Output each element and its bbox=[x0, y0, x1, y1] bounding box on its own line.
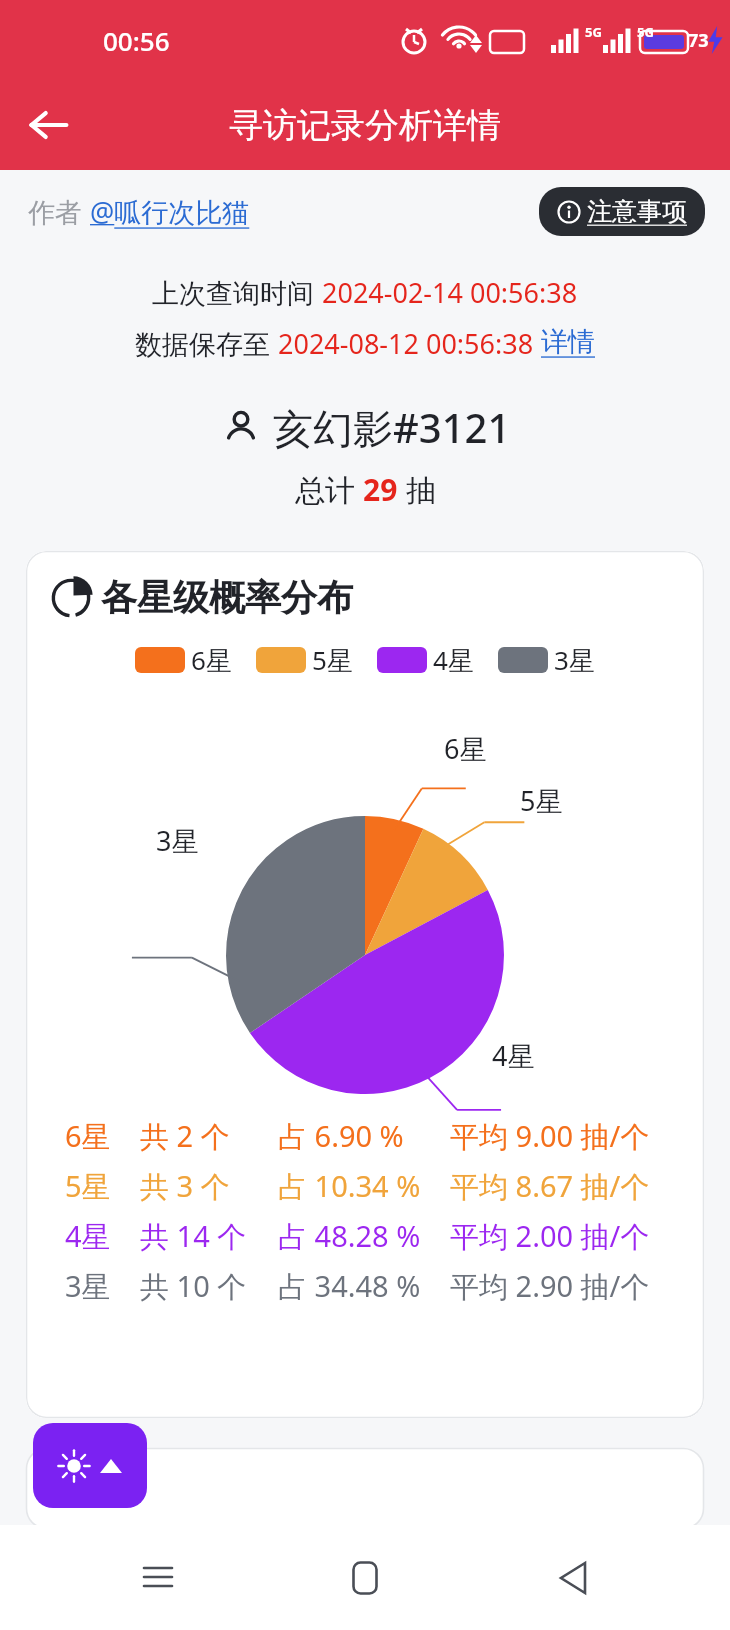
button[interactable]: Back bbox=[523, 1528, 623, 1628]
staticText: 3星 bbox=[156, 822, 199, 859]
button[interactable]: Back bbox=[0, 80, 96, 170]
staticText: 平均 8.67 抽/个 bbox=[450, 1166, 650, 1206]
staticText: 数据保存至 bbox=[135, 325, 278, 362]
button[interactable]: Recents bbox=[108, 1528, 208, 1628]
staticText: 寻访记录分析详情 bbox=[229, 104, 501, 147]
staticText: 平均 2.90 抽/个 bbox=[450, 1266, 650, 1306]
staticText: 6星 bbox=[191, 642, 232, 678]
staticText: 73 bbox=[688, 28, 709, 53]
staticText: 4星 bbox=[492, 1037, 535, 1074]
staticText: 3星 bbox=[554, 642, 595, 678]
staticText: 5星 bbox=[312, 642, 353, 678]
staticText: 各星级概率分布 bbox=[101, 575, 353, 620]
button[interactable]: 详情 bbox=[541, 325, 595, 359]
staticText: 29 bbox=[363, 469, 398, 510]
staticText: 5星 bbox=[520, 782, 563, 819]
staticText: 作者 bbox=[28, 193, 90, 230]
staticText: 2024-02-14 00:56:38 bbox=[322, 274, 578, 311]
staticText: 5G bbox=[637, 23, 654, 41]
staticText: 总计 bbox=[295, 469, 363, 510]
staticText: 共 3 个 bbox=[140, 1166, 230, 1206]
staticText: 占 10.34 % bbox=[278, 1166, 421, 1206]
staticText: 共 2 个 bbox=[140, 1116, 230, 1156]
staticText: 抽 bbox=[398, 469, 436, 510]
staticText: 5G bbox=[585, 23, 602, 41]
staticText: 上次查询时间 bbox=[152, 274, 322, 311]
staticText: 4星 bbox=[65, 1216, 111, 1256]
staticText: 6星 bbox=[65, 1116, 111, 1156]
staticText: 亥幻影#3121 bbox=[273, 400, 511, 455]
staticText: 共 14 个 bbox=[140, 1216, 247, 1256]
button[interactable]: 注意事项 bbox=[539, 187, 705, 236]
staticText: 3星 bbox=[65, 1266, 111, 1306]
staticText: 00:56 bbox=[103, 23, 170, 58]
staticText: 占 34.48 % bbox=[278, 1266, 421, 1306]
staticText: 平均 9.00 抽/个 bbox=[450, 1116, 650, 1156]
staticText: 注意事项 bbox=[587, 196, 687, 227]
button[interactable]: Home bbox=[315, 1528, 415, 1628]
staticText: 2024-08-12 00:56:38 bbox=[278, 325, 541, 362]
staticText: 6星 bbox=[444, 730, 487, 767]
button[interactable]: Theme and scroll to top bbox=[33, 1423, 147, 1508]
button[interactable]: @呱行次比猫 bbox=[90, 193, 250, 230]
staticText: 4星 bbox=[433, 642, 474, 678]
staticText: 5星 bbox=[65, 1166, 111, 1206]
staticText: 共 10 个 bbox=[140, 1266, 247, 1306]
staticText: 平均 2.00 抽/个 bbox=[450, 1216, 650, 1256]
staticText: 占 48.28 % bbox=[278, 1216, 421, 1256]
staticText: 占 6.90 % bbox=[278, 1116, 404, 1156]
